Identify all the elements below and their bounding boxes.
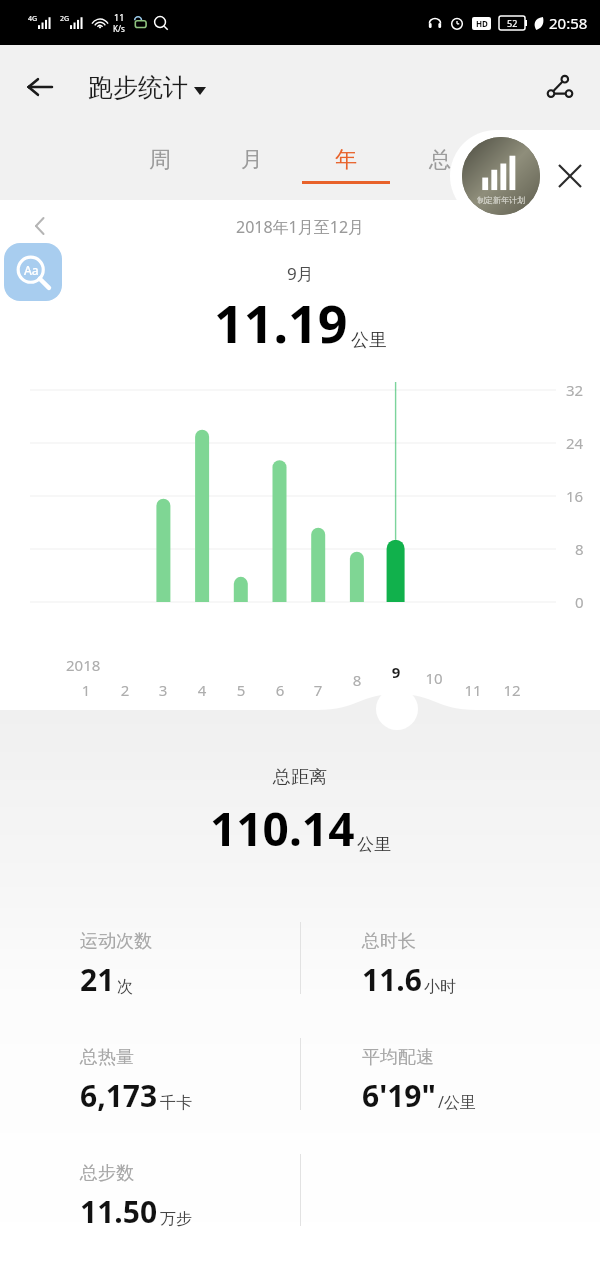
staticText: 制定新年计划 [477,195,525,205]
button[interactable]: 运动次数 [0,902,300,1018]
button[interactable]: 返回 [14,61,66,113]
staticText: 平均配速 [362,1046,434,1069]
staticText: 总时长 [362,930,416,953]
button[interactable]: 视频缩略图 [462,137,540,215]
staticText: 次 [117,977,133,997]
staticText: 52 [507,17,518,29]
staticText: Aa [24,262,39,278]
staticText: 4 [189,680,215,700]
staticText: 12 [499,680,525,700]
staticText: 6 [267,680,293,700]
staticText: 公里 [351,329,387,352]
staticText: 总步数 [80,1162,134,1185]
staticText: 7 [305,680,331,700]
staticText: 公里 [357,834,391,855]
staticText: 跑步统计 [88,72,188,103]
button[interactable]: 平均配速 [300,1018,600,1134]
staticText: K/s [113,23,125,34]
staticText: 10 [421,668,447,688]
staticText: /公里 [438,1091,476,1113]
button[interactable]: 总 [396,129,484,200]
button[interactable]: 年 [302,129,390,200]
staticText: 21 [80,959,115,1000]
staticText: 16 [566,486,584,506]
staticText: 5 [228,680,254,700]
staticText: 4G [28,14,38,24]
staticText: 110.14 [210,797,355,860]
staticText: 2018 [66,655,101,675]
staticText: 8 [344,670,370,690]
button[interactable]: 总热量 [0,1018,300,1134]
staticText: 2018年1月至12月 [236,216,365,238]
button[interactable]: 选择月份 [376,688,418,730]
staticText: 月 [241,146,263,174]
staticText: 2G [60,14,70,24]
button[interactable]: 上一年 [22,208,58,244]
staticText: 6'19" [362,1075,436,1116]
staticText: 8 [575,539,584,559]
staticText: 2 [112,680,138,700]
staticText: 总 [429,146,451,174]
staticText: 万步 [160,1209,192,1229]
staticText: 3 [150,680,176,700]
staticText: 总热量 [80,1046,134,1069]
staticText: 11.19 [214,287,348,358]
staticText: 1 [73,680,99,700]
button[interactable]: 周 [116,129,204,200]
button[interactable]: 取词翻译 [4,243,62,301]
staticText: 总距离 [273,766,327,789]
staticText: 9月 [287,262,314,285]
staticText: 运动次数 [80,930,152,953]
staticText: 11.50 [80,1191,158,1232]
staticText: 年 [335,146,357,174]
staticText: 6,173 [80,1075,158,1116]
staticText: 11 [460,680,486,700]
button[interactable]: 跑步统计 [88,72,206,103]
button[interactable]: 月 [208,129,296,200]
button[interactable]: 分享 [534,61,586,113]
staticText: 11 [114,11,125,23]
staticText: HD [476,18,488,29]
staticText: 9 [383,662,409,682]
staticText: 千卡 [160,1093,192,1113]
staticText: 32 [566,380,584,400]
button[interactable]: 关闭 [550,156,590,196]
staticText: 小时 [424,977,456,997]
staticText: 11.6 [362,959,422,1000]
button[interactable]: 总步数 [0,1134,300,1250]
button[interactable]: 总时长 [300,902,600,1018]
staticText: 周 [149,146,171,174]
staticText: 24 [566,433,584,453]
staticText: 20:58 [549,13,588,33]
staticText: 0 [575,592,584,612]
